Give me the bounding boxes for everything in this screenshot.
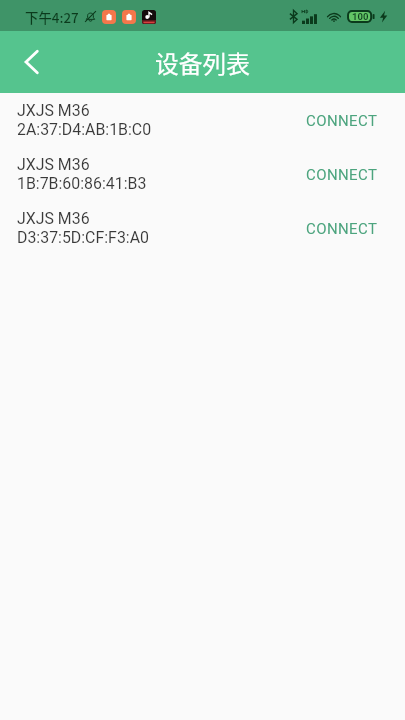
staticText: CONNECT bbox=[306, 220, 378, 238]
button[interactable]: CONNECT bbox=[304, 157, 380, 191]
button[interactable]: CONNECT bbox=[304, 103, 380, 137]
staticText: CONNECT bbox=[306, 112, 378, 130]
staticText: D3:37:5D:CF:F3:A0 bbox=[17, 228, 149, 247]
button[interactable]: Back bbox=[0, 31, 60, 93]
staticText: JXJS M36 bbox=[17, 101, 90, 120]
staticText: 100 bbox=[352, 11, 369, 22]
staticText: JXJS M36 bbox=[17, 155, 90, 174]
staticText: 下午4:27 bbox=[25, 7, 79, 26]
button[interactable]: JXJS M36 bbox=[0, 93, 405, 147]
button[interactable]: CONNECT bbox=[304, 211, 380, 245]
staticText: JXJS M36 bbox=[17, 209, 90, 228]
button[interactable]: JXJS M36 bbox=[0, 201, 405, 255]
staticText: 2A:37:D4:AB:1B:C0 bbox=[17, 120, 152, 139]
staticText: 1B:7B:60:86:41:B3 bbox=[17, 174, 147, 193]
staticText: CONNECT bbox=[306, 166, 378, 184]
button[interactable]: JXJS M36 bbox=[0, 147, 405, 201]
staticText: 设备列表 bbox=[155, 46, 250, 80]
